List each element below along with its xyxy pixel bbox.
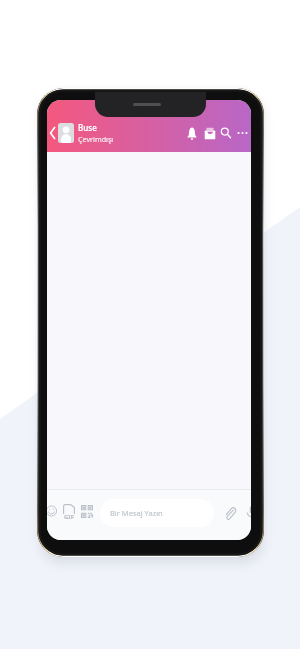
button[interactable]: Attach file [221,502,239,524]
button[interactable]: Back [47,122,57,144]
button[interactable]: Search [218,122,234,144]
button[interactable]: Emoji [47,500,60,522]
button[interactable]: Archive [201,122,218,144]
button[interactable]: Voice message [242,501,251,524]
staticText: Bir Mesaj Yazın [110,508,163,518]
staticText: Buse [78,122,97,133]
button[interactable]: QR code [78,501,96,522]
button[interactable]: GIF [60,501,78,523]
button[interactable]: Bir Mesaj Yazın [100,499,214,527]
staticText: Çevrimdışı [78,134,114,144]
button[interactable]: More options [234,122,251,144]
button[interactable]: Notifications [182,122,201,144]
staticText: GIF [64,513,74,521]
